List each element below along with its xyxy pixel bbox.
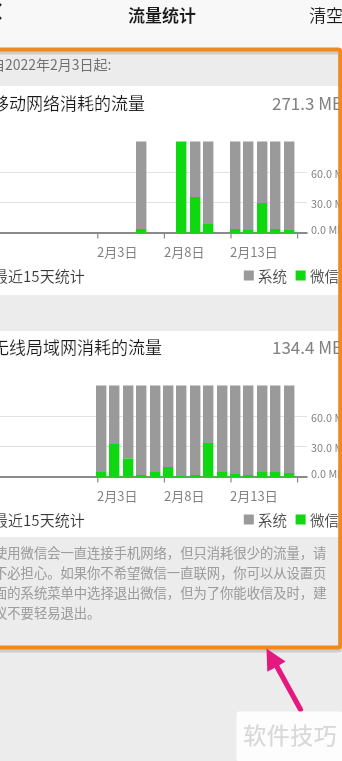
staticText: 30.0 MB (311, 195, 342, 211)
staticText: 2月8日 (164, 242, 205, 261)
staticText: 2月13日 (230, 486, 278, 505)
staticText: 0.0 MB (311, 221, 342, 237)
staticText: 使用微信会一直连接手机网络，但只消耗很少的流量，请 不必担心。如果你不希望微信一… (0, 543, 327, 622)
button[interactable]: 清空 (300, 0, 342, 48)
staticText: 无线局域网消耗的流量 (0, 334, 162, 359)
staticText: 最近15天统计 (0, 509, 85, 531)
staticText: 最近15天统计 (0, 265, 85, 287)
staticText: 2月3日 (97, 486, 138, 505)
staticText: 60.0 MB (311, 409, 342, 425)
staticText: 134.4 MB (272, 334, 342, 359)
staticText: 微信 (310, 265, 339, 286)
staticText: 自2022年2月3日起: (0, 54, 112, 74)
staticText: 2月13日 (230, 242, 278, 261)
staticText: 0.0 MB (311, 465, 342, 481)
staticText: 清空 (309, 2, 342, 27)
staticText: 流量统计 (128, 2, 196, 27)
staticText: 系统 (258, 265, 287, 286)
staticText: 微信 (310, 509, 339, 530)
staticText: 271.3 MB (272, 90, 342, 115)
staticText: 60.0 MB (311, 165, 342, 181)
staticText: 软件技巧 (243, 717, 337, 750)
staticText: 2月3日 (97, 242, 138, 261)
button[interactable] (0, 0, 40, 48)
staticText: 30.0 MB (311, 439, 342, 455)
staticText: 2月8日 (164, 486, 205, 505)
staticText: 移动网络消耗的流量 (0, 90, 145, 115)
staticText: 系统 (258, 509, 287, 530)
